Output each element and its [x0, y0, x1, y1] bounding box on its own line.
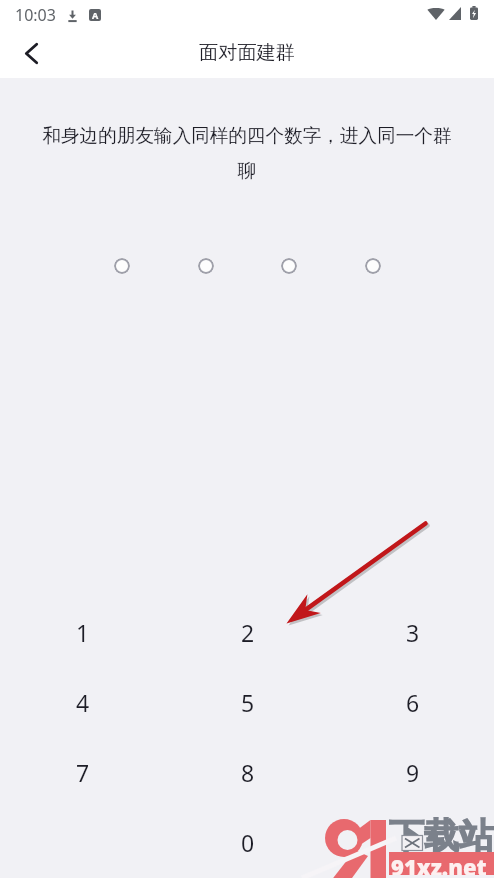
staticText: 4 [76, 687, 90, 718]
staticText: 6 [406, 687, 420, 718]
button[interactable]: 3 [329, 598, 494, 668]
button[interactable]: 5 [164, 668, 329, 738]
staticText: 7 [76, 757, 90, 788]
button[interactable]: 6 [329, 668, 494, 738]
staticText: 9 [406, 757, 420, 788]
staticText: 5 [241, 687, 255, 718]
staticText: 0 [241, 827, 255, 858]
button[interactable]: 4 [0, 668, 164, 738]
staticText: 面对面建群 [199, 41, 295, 65]
button[interactable]: Back [8, 32, 52, 76]
staticText: 2 [241, 617, 255, 648]
staticText: A [92, 9, 99, 21]
staticText: 8 [241, 757, 255, 788]
button[interactable]: 2 [164, 598, 329, 668]
button[interactable]: 7 [0, 738, 164, 808]
button[interactable]: 0 [164, 808, 329, 878]
button[interactable]: 1 [0, 598, 164, 668]
staticText: 10:03 [15, 4, 56, 26]
button[interactable]: 8 [164, 738, 329, 808]
staticText: 下载站 [389, 814, 494, 858]
staticText: 1 [76, 617, 90, 648]
staticText: 91xz.net [391, 852, 487, 875]
button[interactable]: 9 [329, 738, 494, 808]
staticText: 和身边的朋友输入同样的四个数字，进入同一个群聊 [40, 124, 454, 183]
staticText: 3 [406, 617, 420, 648]
